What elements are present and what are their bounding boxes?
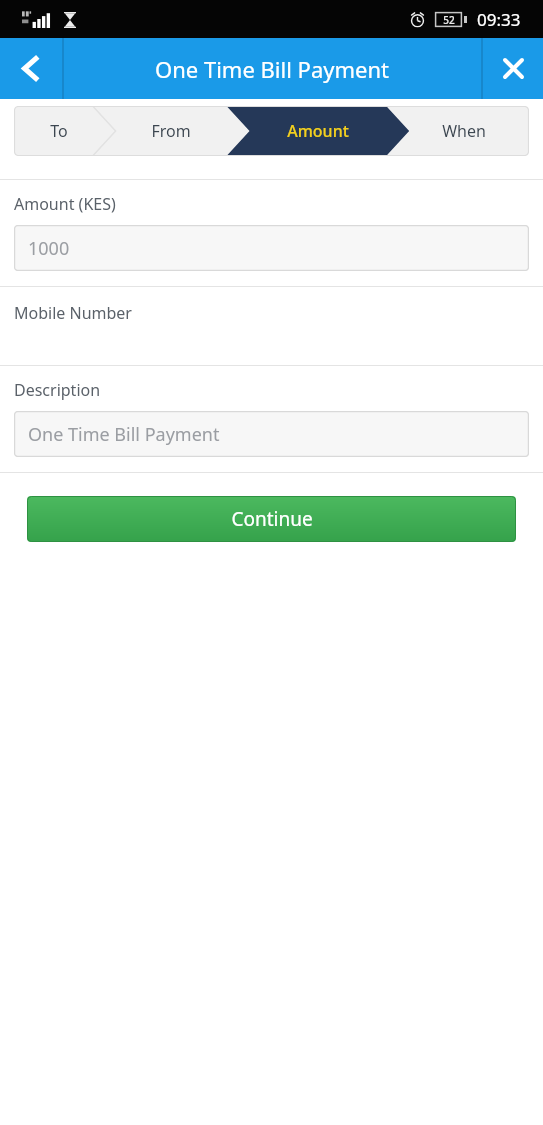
button[interactable]: Continue <box>27 496 516 542</box>
staticText: One Time Bill Payment <box>155 54 389 84</box>
staticText: Continue <box>231 506 313 532</box>
staticText: Mobile Number <box>14 302 132 324</box>
staticText: When <box>442 120 486 142</box>
staticText: 09:33 <box>477 8 521 31</box>
button[interactable]: When <box>398 106 529 156</box>
staticText: To <box>50 120 68 142</box>
button[interactable]: From <box>104 106 238 156</box>
button[interactable]: One Time Bill Payment <box>14 411 529 457</box>
button[interactable]: Amount <box>238 106 398 156</box>
staticText: 1000 <box>28 236 70 261</box>
staticText: 52 <box>443 13 455 27</box>
button[interactable]: To <box>14 106 104 156</box>
button[interactable]: Back <box>0 38 62 99</box>
staticText: Description <box>14 379 101 401</box>
staticText: Amount <box>287 120 349 142</box>
staticText: Amount (KES) <box>14 193 116 215</box>
button[interactable]: 1000 <box>14 225 529 271</box>
staticText: One Time Bill Payment <box>28 422 220 447</box>
staticText: From <box>151 120 191 142</box>
button[interactable]: Close <box>483 38 543 99</box>
